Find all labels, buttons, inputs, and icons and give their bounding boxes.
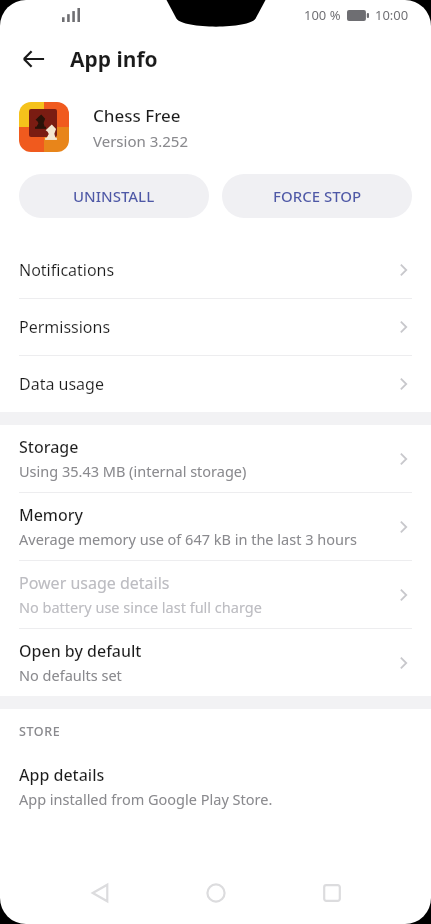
staticText: App details [19, 764, 105, 786]
staticText: No battery use since last full charge [19, 597, 262, 617]
staticText: App installed from Google Play Store. [19, 789, 273, 809]
staticText: No defaults set [19, 665, 122, 685]
button[interactable]: Notifications [0, 242, 431, 298]
button[interactable]: Back [73, 866, 127, 920]
staticText: Open by default [19, 640, 142, 662]
staticText: STORE [19, 723, 61, 740]
button[interactable]: Storage [0, 425, 431, 492]
staticText: Memory [19, 504, 84, 526]
staticText: Using 35.43 MB (internal storage) [19, 461, 247, 481]
button[interactable]: App details [0, 753, 431, 820]
button[interactable]: Home [189, 866, 243, 920]
button[interactable]: Data usage [0, 356, 431, 412]
button[interactable]: Open by default [0, 629, 431, 696]
button[interactable]: UNINSTALL [19, 174, 209, 218]
staticText: 10:00 [375, 6, 409, 24]
button[interactable]: FORCE STOP [222, 174, 412, 218]
staticText: Permissions [19, 316, 111, 338]
staticText: Average memory use of 647 kB in the last… [19, 529, 357, 549]
staticText: App info [70, 45, 158, 74]
staticText: Notifications [19, 259, 115, 281]
staticText: UNINSTALL [73, 186, 155, 206]
button[interactable]: Permissions [0, 299, 431, 355]
staticText: Version 3.252 [93, 131, 188, 151]
button[interactable]: Back [10, 35, 58, 83]
button[interactable]: Memory [0, 493, 431, 560]
staticText: Power usage details [19, 572, 170, 594]
staticText: Storage [19, 436, 79, 458]
button[interactable]: Power usage details [0, 561, 431, 628]
staticText: Chess Free [93, 104, 181, 127]
button[interactable]: Recents [305, 866, 359, 920]
staticText: FORCE STOP [273, 186, 362, 206]
staticText: Data usage [19, 373, 104, 395]
staticText: 100 % [304, 6, 341, 24]
